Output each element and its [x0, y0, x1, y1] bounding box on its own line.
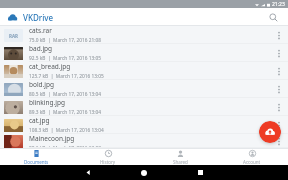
- button[interactable]: Upload: [259, 121, 281, 143]
- button[interactable]: More options: [272, 44, 286, 62]
- button[interactable]: More options: [272, 134, 286, 148]
- staticText: blinking.jpg: [29, 98, 65, 107]
- staticText: RAR: [9, 33, 19, 39]
- button[interactable]: RAR: [0, 26, 288, 44]
- button[interactable]: cat.jpg: [0, 116, 288, 134]
- button[interactable]: Shared: [144, 149, 216, 165]
- button[interactable]: More options: [272, 98, 286, 116]
- button[interactable]: bad.jpg: [0, 44, 288, 62]
- staticText: bold.jpg: [29, 80, 55, 89]
- staticText: 108.3 kB | March 17, 2016 13:04: [29, 127, 104, 134]
- button[interactable]: More options: [272, 80, 286, 98]
- button[interactable]: Back: [80, 165, 96, 180]
- staticText: 80.5 kB | March 17, 2016 13:04: [29, 91, 102, 98]
- button[interactable]: Search: [265, 9, 281, 25]
- button[interactable]: Account: [216, 149, 288, 165]
- staticText: History: [100, 159, 116, 165]
- staticText: cats.rar: [29, 26, 52, 35]
- staticText: 125.7 kB | March 17, 2016 13:05: [29, 73, 104, 80]
- staticText: 89.3 kB | March 17, 2016 13:04: [29, 109, 102, 116]
- staticText: cat.jpg: [29, 116, 50, 125]
- staticText: cat_bread.jpg: [29, 62, 71, 71]
- staticText: bad.jpg: [29, 44, 53, 53]
- staticText: 75.0 kB | March 17, 2016 21:08: [29, 37, 102, 44]
- staticText: 21:23: [272, 1, 285, 8]
- button[interactable]: Recents: [192, 165, 208, 180]
- button[interactable]: More options: [272, 116, 286, 134]
- button[interactable]: Home: [136, 165, 152, 180]
- button[interactable]: More options: [272, 62, 286, 80]
- staticText: 92.5 kB | March 17, 2016 13:05: [29, 55, 102, 62]
- staticText: 98.1 kB | March 17, 2016 13:03: [29, 145, 102, 148]
- button[interactable]: Mainecoon.jpg: [0, 134, 288, 148]
- staticText: VKDrive: [23, 12, 54, 23]
- button[interactable]: More options: [272, 26, 286, 44]
- button[interactable]: bold.jpg: [0, 80, 288, 98]
- staticText: Shared: [173, 159, 188, 165]
- button[interactable]: History: [72, 149, 144, 165]
- button[interactable]: blinking.jpg: [0, 98, 288, 116]
- button[interactable]: cat_bread.jpg: [0, 62, 288, 80]
- staticText: Documents: [24, 159, 49, 165]
- staticText: Account: [243, 159, 261, 165]
- button[interactable]: Documents: [0, 149, 72, 165]
- staticText: Mainecoon.jpg: [29, 134, 75, 143]
